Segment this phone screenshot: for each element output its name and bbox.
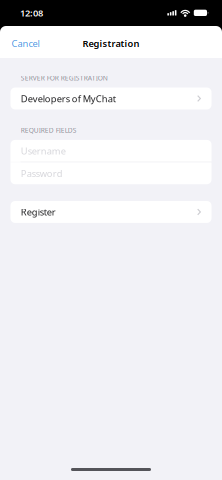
staticText: Username (21, 145, 66, 157)
staticText: SERVER FOR REGISTRATION (21, 73, 108, 82)
staticText: Developers of MyChat (21, 92, 116, 105)
button[interactable]: Username (10, 140, 211, 162)
staticText: Register (21, 206, 56, 218)
button[interactable]: Developers of MyChat (10, 88, 211, 109)
staticText: Password (21, 167, 63, 179)
button[interactable]: Password (10, 162, 211, 184)
button[interactable]: Cancel (0, 26, 51, 58)
staticText: Cancel (11, 37, 39, 50)
staticText: REQUIRED FIELDS (21, 126, 77, 135)
staticText: Registration (82, 37, 139, 50)
button[interactable]: Register (10, 201, 211, 223)
staticText: 12:08 (20, 7, 43, 19)
